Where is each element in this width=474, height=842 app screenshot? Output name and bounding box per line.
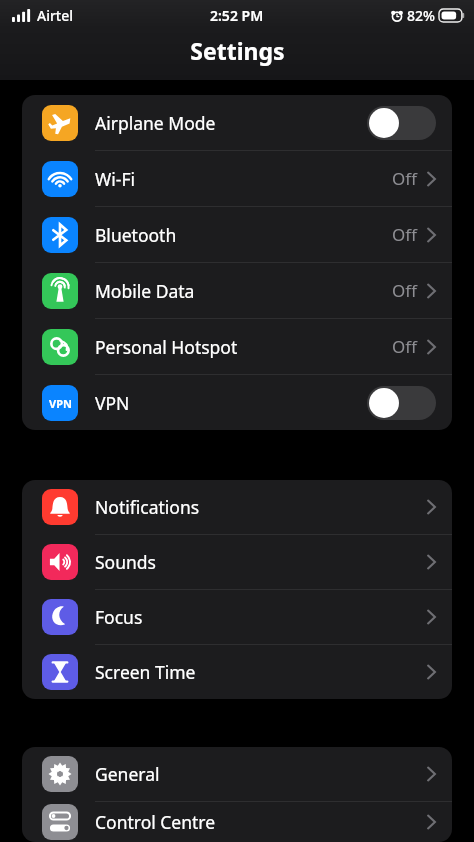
- staticText: Airtel: [37, 6, 74, 25]
- staticText: Off: [392, 335, 417, 358]
- button[interactable]: VPN: [22, 375, 452, 430]
- staticText: Off: [392, 279, 417, 302]
- staticText: Control Centre: [95, 810, 427, 834]
- button[interactable]: Screen Time: [22, 645, 452, 699]
- staticText: Wi-Fi: [95, 167, 392, 191]
- staticText: Off: [392, 223, 417, 246]
- staticText: Notifications: [95, 495, 427, 519]
- button[interactable]: Airplane Mode: [22, 95, 452, 150]
- staticText: 2:52 PM: [210, 6, 264, 25]
- staticText: VPN: [95, 391, 367, 415]
- button[interactable]: Wi-Fi: [22, 151, 452, 206]
- button[interactable]: Bluetooth: [22, 207, 452, 262]
- button[interactable]: General: [22, 747, 452, 801]
- staticText: Screen Time: [95, 660, 427, 684]
- button[interactable]: Notifications: [22, 480, 452, 534]
- staticText: VPN: [49, 396, 72, 411]
- button[interactable]: Toggle: [367, 386, 436, 420]
- staticText: Sounds: [95, 550, 427, 574]
- staticText: Mobile Data: [95, 279, 392, 303]
- button[interactable]: Toggle: [367, 106, 436, 140]
- button[interactable]: Personal Hotspot: [22, 319, 452, 374]
- staticText: Personal Hotspot: [95, 335, 392, 359]
- staticText: Airplane Mode: [95, 111, 367, 135]
- staticText: Focus: [95, 605, 427, 629]
- button[interactable]: Sounds: [22, 535, 452, 589]
- staticText: 82%: [407, 6, 435, 25]
- staticText: Off: [392, 167, 417, 190]
- staticText: Settings: [190, 35, 285, 66]
- button[interactable]: Control Centre: [22, 802, 452, 842]
- staticText: General: [95, 762, 427, 786]
- button[interactable]: Mobile Data: [22, 263, 452, 318]
- button[interactable]: Focus: [22, 590, 452, 644]
- staticText: Bluetooth: [95, 223, 392, 247]
